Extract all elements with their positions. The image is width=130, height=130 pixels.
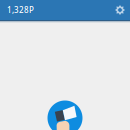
staticText: 1,328P <box>7 5 34 15</box>
button[interactable]: Announce <box>47 100 82 130</box>
button[interactable]: Settings <box>112 0 128 20</box>
